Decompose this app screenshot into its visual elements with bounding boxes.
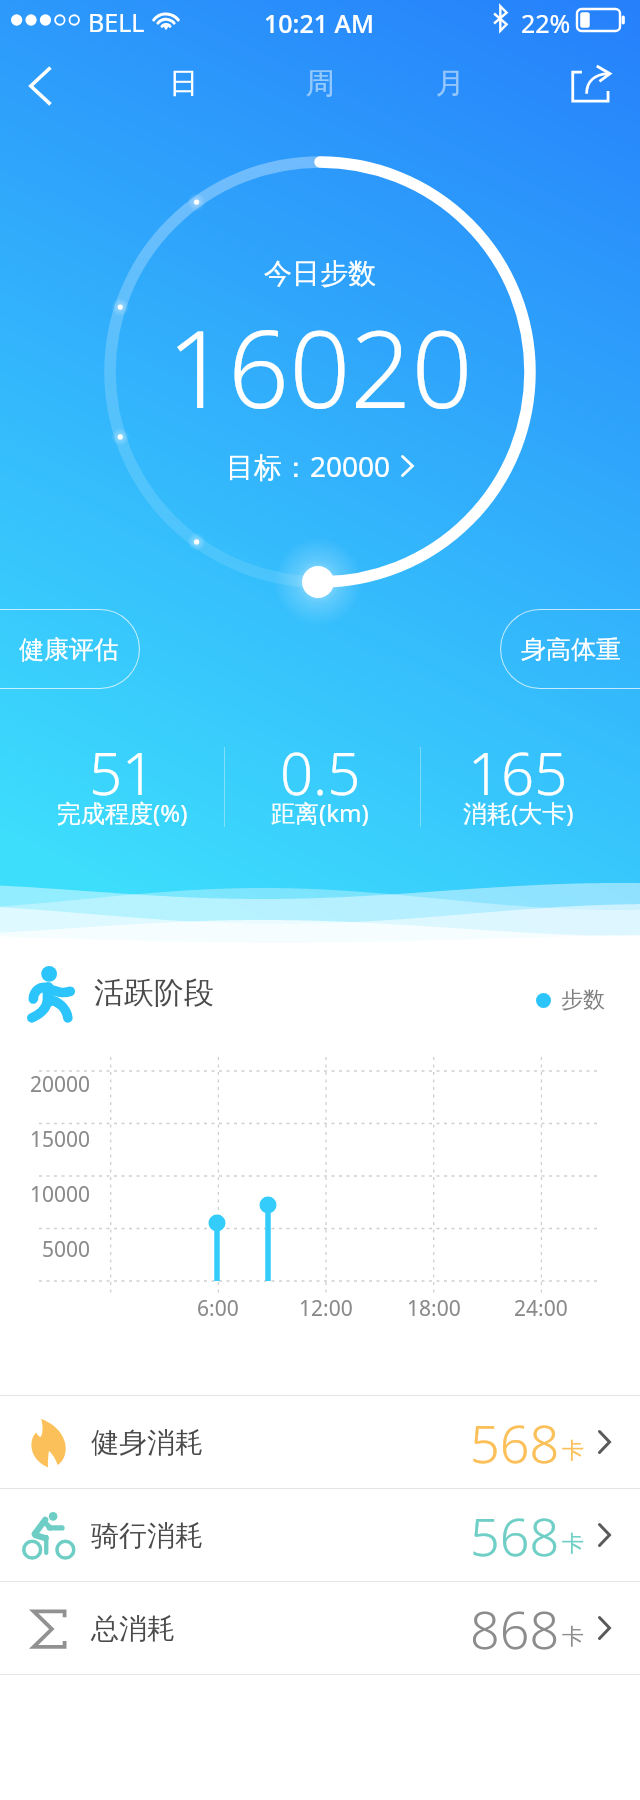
button[interactable]: 总消耗: [0, 1582, 640, 1674]
staticText: 卡: [562, 1623, 584, 1651]
staticText: 目标：20000: [226, 447, 391, 485]
staticText: 0.5: [280, 733, 361, 812]
staticText: 卡: [562, 1530, 584, 1558]
button[interactable]: Share: [562, 54, 620, 112]
button[interactable]: 身高体重: [500, 609, 640, 689]
staticText: 24:00: [514, 1294, 568, 1323]
staticText: 5000: [42, 1235, 91, 1264]
staticText: 完成程度(%): [57, 796, 188, 829]
staticText: 今日步数: [264, 256, 376, 291]
staticText: 10000: [30, 1180, 91, 1209]
staticText: 活跃阶段: [94, 974, 214, 1012]
staticText: 20000: [30, 1070, 91, 1099]
staticText: 868: [470, 1593, 560, 1664]
staticText: 步数: [561, 986, 605, 1014]
staticText: 16020: [167, 294, 473, 440]
staticText: 18:00: [407, 1294, 461, 1323]
staticText: 健身消耗: [91, 1425, 203, 1460]
button[interactable]: 月: [422, 61, 478, 105]
staticText: 165: [468, 733, 568, 812]
button[interactable]: 健身消耗: [0, 1396, 640, 1488]
button[interactable]: 健康评估: [0, 609, 140, 689]
staticText: 日: [169, 65, 198, 102]
button[interactable]: 骑行消耗: [0, 1489, 640, 1581]
staticText: 51: [89, 733, 156, 812]
staticText: 15000: [30, 1125, 91, 1154]
button[interactable]: Back: [14, 58, 66, 110]
staticText: 健康评估: [19, 634, 119, 665]
staticText: 卡: [562, 1437, 584, 1465]
staticText: 周: [306, 65, 335, 102]
staticText: 总消耗: [91, 1611, 175, 1646]
staticText: 月: [436, 65, 465, 102]
button[interactable]: 日: [155, 61, 211, 105]
staticText: 消耗(大卡): [463, 796, 574, 829]
staticText: 568: [470, 1500, 560, 1571]
staticText: 6:00: [197, 1294, 239, 1323]
staticText: 骑行消耗: [91, 1518, 203, 1553]
staticText: 568: [470, 1407, 560, 1478]
staticText: 10:21 AM: [264, 6, 374, 40]
staticText: 身高体重: [521, 634, 621, 665]
staticText: 12:00: [299, 1294, 353, 1323]
button[interactable]: 周: [292, 61, 348, 105]
staticText: BELL: [88, 5, 145, 39]
button[interactable]: 目标：20000: [226, 447, 414, 485]
staticText: 22%: [521, 6, 571, 40]
staticText: 距离(km): [271, 796, 369, 829]
